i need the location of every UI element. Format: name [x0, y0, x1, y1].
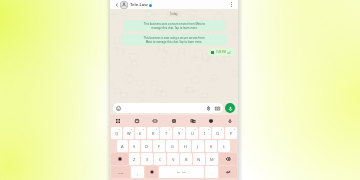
button[interactable]: Shift [111, 153, 128, 165]
staticText: A [121, 144, 124, 149]
button[interactable]: P [225, 127, 237, 139]
staticText: , [137, 170, 139, 175]
button[interactable]: Enter [219, 166, 237, 178]
staticText: 9 [221, 128, 223, 131]
staticText: X [146, 157, 149, 162]
staticText: M [210, 157, 214, 162]
staticText: 1 [119, 128, 121, 131]
button[interactable]: T [160, 127, 172, 139]
staticText: 2 [131, 128, 133, 131]
button[interactable]: F [153, 140, 165, 152]
button[interactable]: Emoji [113, 103, 223, 113]
staticText: W [127, 131, 131, 136]
button[interactable]: I [199, 127, 211, 139]
staticText: 4 [156, 128, 158, 131]
staticText: ?123 [118, 171, 124, 174]
button[interactable]: GIF [151, 117, 159, 125]
button[interactable]: J [192, 140, 204, 152]
staticText: T [165, 131, 168, 136]
staticText: C [159, 157, 162, 162]
button[interactable]: Voice message [225, 103, 235, 113]
button[interactable]: Q [111, 127, 122, 139]
other: Emoji [116, 106, 121, 111]
staticText: 7:46 PM [216, 50, 226, 54]
button[interactable]: 7:46 PM [208, 48, 234, 56]
staticText: G [171, 144, 174, 149]
staticText: This business is now using a secure serv… [124, 36, 224, 43]
button[interactable]: V [167, 153, 179, 165]
button[interactable]: L [218, 140, 230, 152]
staticText: R [152, 131, 155, 136]
button[interactable]: M [206, 153, 218, 165]
button[interactable]: Clipboard [133, 117, 141, 125]
staticText: 8 [208, 128, 210, 131]
staticText: Y [178, 131, 181, 136]
staticText: D [145, 144, 148, 149]
button[interactable]: B [180, 153, 192, 165]
button[interactable]: X [141, 153, 153, 165]
staticText: Q [115, 131, 119, 136]
staticText: O [216, 131, 220, 136]
button[interactable]: R [147, 127, 159, 139]
staticText: V [172, 157, 175, 162]
staticText: I [204, 131, 206, 136]
button[interactable]: Language [145, 166, 158, 178]
button[interactable]: Settings [170, 117, 178, 125]
staticText: . [211, 170, 213, 175]
staticText: E [139, 131, 142, 136]
button[interactable]: G [166, 140, 178, 152]
staticText: F [158, 144, 161, 149]
staticText: L [223, 144, 226, 149]
button[interactable]: D [141, 140, 152, 152]
button[interactable]: H [179, 140, 191, 152]
button[interactable]: Tele-Law [130, 2, 228, 8]
button[interactable]: O [212, 127, 224, 139]
button[interactable]: Camera [215, 106, 220, 111]
button[interactable]: A [117, 140, 128, 152]
button[interactable]: Attach [206, 106, 211, 111]
button[interactable]: E [135, 127, 146, 139]
staticText: J [197, 144, 199, 149]
button[interactable]: W [123, 127, 134, 139]
button[interactable]: Apps [114, 117, 122, 125]
button[interactable]: Stickers [207, 117, 215, 125]
button[interactable]: More options [228, 1, 235, 8]
staticText: N [197, 157, 201, 162]
staticText: This business uses a secure service from… [126, 22, 223, 29]
staticText: 3 [143, 128, 145, 131]
button[interactable]: N [193, 153, 205, 165]
button[interactable]: U [186, 127, 198, 139]
staticText: Tele-Law [130, 2, 148, 8]
staticText: 6 [182, 128, 184, 131]
staticText: H [184, 144, 187, 149]
button[interactable]: Translate [189, 117, 197, 125]
staticText: 0 [234, 128, 236, 131]
button[interactable]: Back [113, 1, 120, 8]
button[interactable]: , [131, 166, 144, 178]
staticText: Today [170, 12, 178, 16]
button[interactable]: This business uses a secure service from… [123, 20, 226, 31]
button[interactable]: Y [173, 127, 185, 139]
staticText: 5 [169, 128, 171, 131]
button[interactable]: K [205, 140, 217, 152]
button[interactable]: ?123 [111, 166, 130, 178]
staticText: U [191, 131, 194, 136]
staticText: EN • HG [177, 171, 186, 174]
button[interactable]: Z [129, 153, 140, 165]
button[interactable]: . [205, 166, 218, 178]
button[interactable]: This business is now using a secure serv… [121, 34, 227, 45]
staticText: K [210, 144, 213, 149]
staticText: Z [133, 157, 136, 162]
staticText: P [230, 131, 233, 136]
staticText: S [133, 144, 136, 149]
staticText: B [185, 157, 188, 162]
button[interactable]: S [129, 140, 140, 152]
button[interactable]: Backspace [219, 153, 237, 165]
button[interactable]: EN • HG [159, 166, 204, 178]
staticText: 7 [195, 128, 197, 131]
button[interactable]: C [154, 153, 166, 165]
button[interactable]: Voice [226, 117, 234, 125]
